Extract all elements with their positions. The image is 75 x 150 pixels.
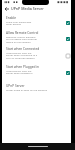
staticText: Automatically start the server when plug… [6,69,33,75]
button[interactable]: Start when Connected [2,0,71,13]
button[interactable]: UPnP Server [2,0,71,7]
button[interactable]: Toggle setting [63,68,72,77]
staticText: Allow Remote Control [6,31,39,35]
button[interactable]: Toggle setting [63,51,72,60]
staticText: Enable [6,16,17,20]
staticText: Remotely control playback on this device… [6,35,37,44]
button[interactable]: Toggle setting [63,18,72,27]
button[interactable]: Start when Plugged in [2,0,71,10]
staticText: Automatically start the server when conn… [6,51,38,60]
staticText: UPnP Server [6,84,25,88]
staticText: Start when Plugged in [6,65,40,69]
staticText: Share your media with other devices [6,20,32,26]
staticText: Server name as seen on the network [6,88,48,91]
staticText: UPnP Media Server [11,6,44,11]
staticText: Start when Connected [6,47,40,51]
button[interactable]: Toggle setting [63,34,72,43]
button[interactable]: Back [2,4,11,13]
button[interactable]: Allow Remote Control [2,0,71,13]
button[interactable]: Enable [2,0,71,10]
